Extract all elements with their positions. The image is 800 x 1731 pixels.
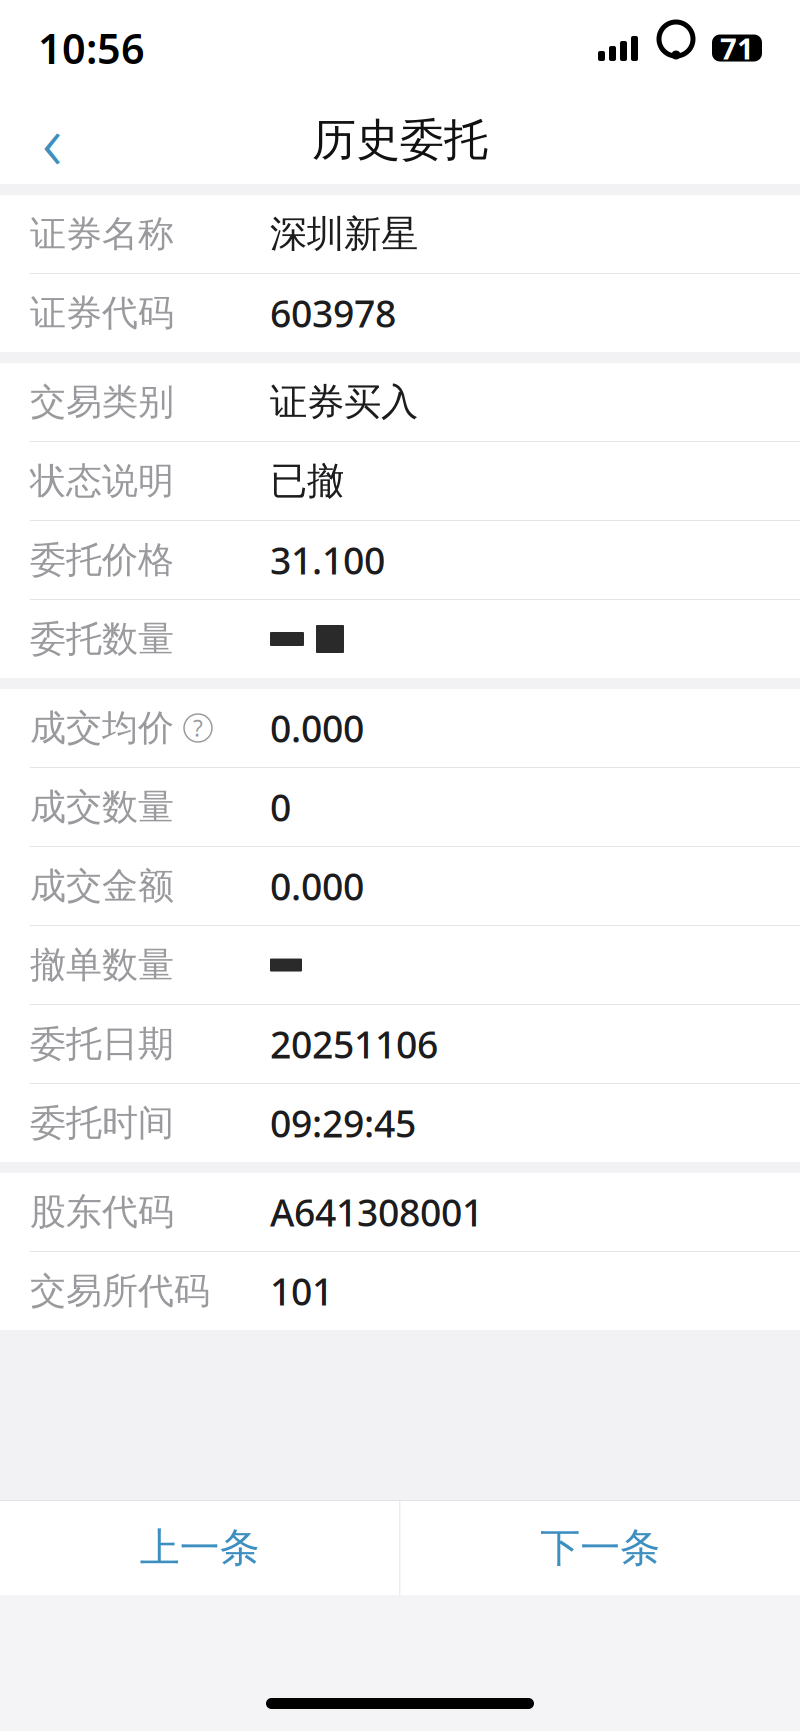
staticText: 委托数量 xyxy=(30,617,174,661)
staticText: 603978 xyxy=(270,288,396,338)
staticText: 交易类别 xyxy=(30,380,174,424)
staticText: ? xyxy=(193,713,203,743)
staticText: 0 xyxy=(270,782,291,832)
staticText: 证券买入 xyxy=(270,379,418,425)
button[interactable]: 上一条 xyxy=(0,1501,399,1595)
staticText: 证券代码 xyxy=(30,291,174,335)
staticText: 已撤 xyxy=(270,458,344,504)
staticText: 71 xyxy=(720,28,754,67)
staticText: 09:29:45 xyxy=(270,1098,416,1148)
staticText: 股东代码 xyxy=(30,1190,174,1234)
staticText: 历史委托 xyxy=(312,113,488,167)
staticText: 101 xyxy=(270,1266,333,1316)
staticText: 委托时间 xyxy=(30,1101,174,1145)
staticText: 深圳新星 xyxy=(270,211,418,257)
staticText: 20251106 xyxy=(270,1019,438,1069)
staticText: 上一条 xyxy=(140,1523,260,1572)
button[interactable]: 下一条 xyxy=(400,1501,800,1595)
staticText: 0.000 xyxy=(270,703,364,753)
staticText: ‹ xyxy=(42,89,62,191)
staticText: 成交金额 xyxy=(30,864,174,908)
staticText: 成交数量 xyxy=(30,785,174,829)
staticText: 委托日期 xyxy=(30,1022,174,1066)
staticText: 委托价格 xyxy=(30,538,174,582)
staticText: 下一条 xyxy=(540,1523,660,1572)
button[interactable]: Back xyxy=(14,102,90,178)
staticText: A641308001 xyxy=(270,1187,483,1237)
staticText: 状态说明 xyxy=(30,459,174,503)
staticText: 成交均价 xyxy=(30,706,174,750)
staticText: 10:56 xyxy=(38,21,145,75)
staticText: 交易所代码 xyxy=(30,1269,210,1313)
staticText: 撤单数量 xyxy=(30,943,174,987)
staticText: 证券名称 xyxy=(30,212,174,256)
staticText: 0.000 xyxy=(270,861,364,911)
staticText: 31.100 xyxy=(270,535,385,585)
